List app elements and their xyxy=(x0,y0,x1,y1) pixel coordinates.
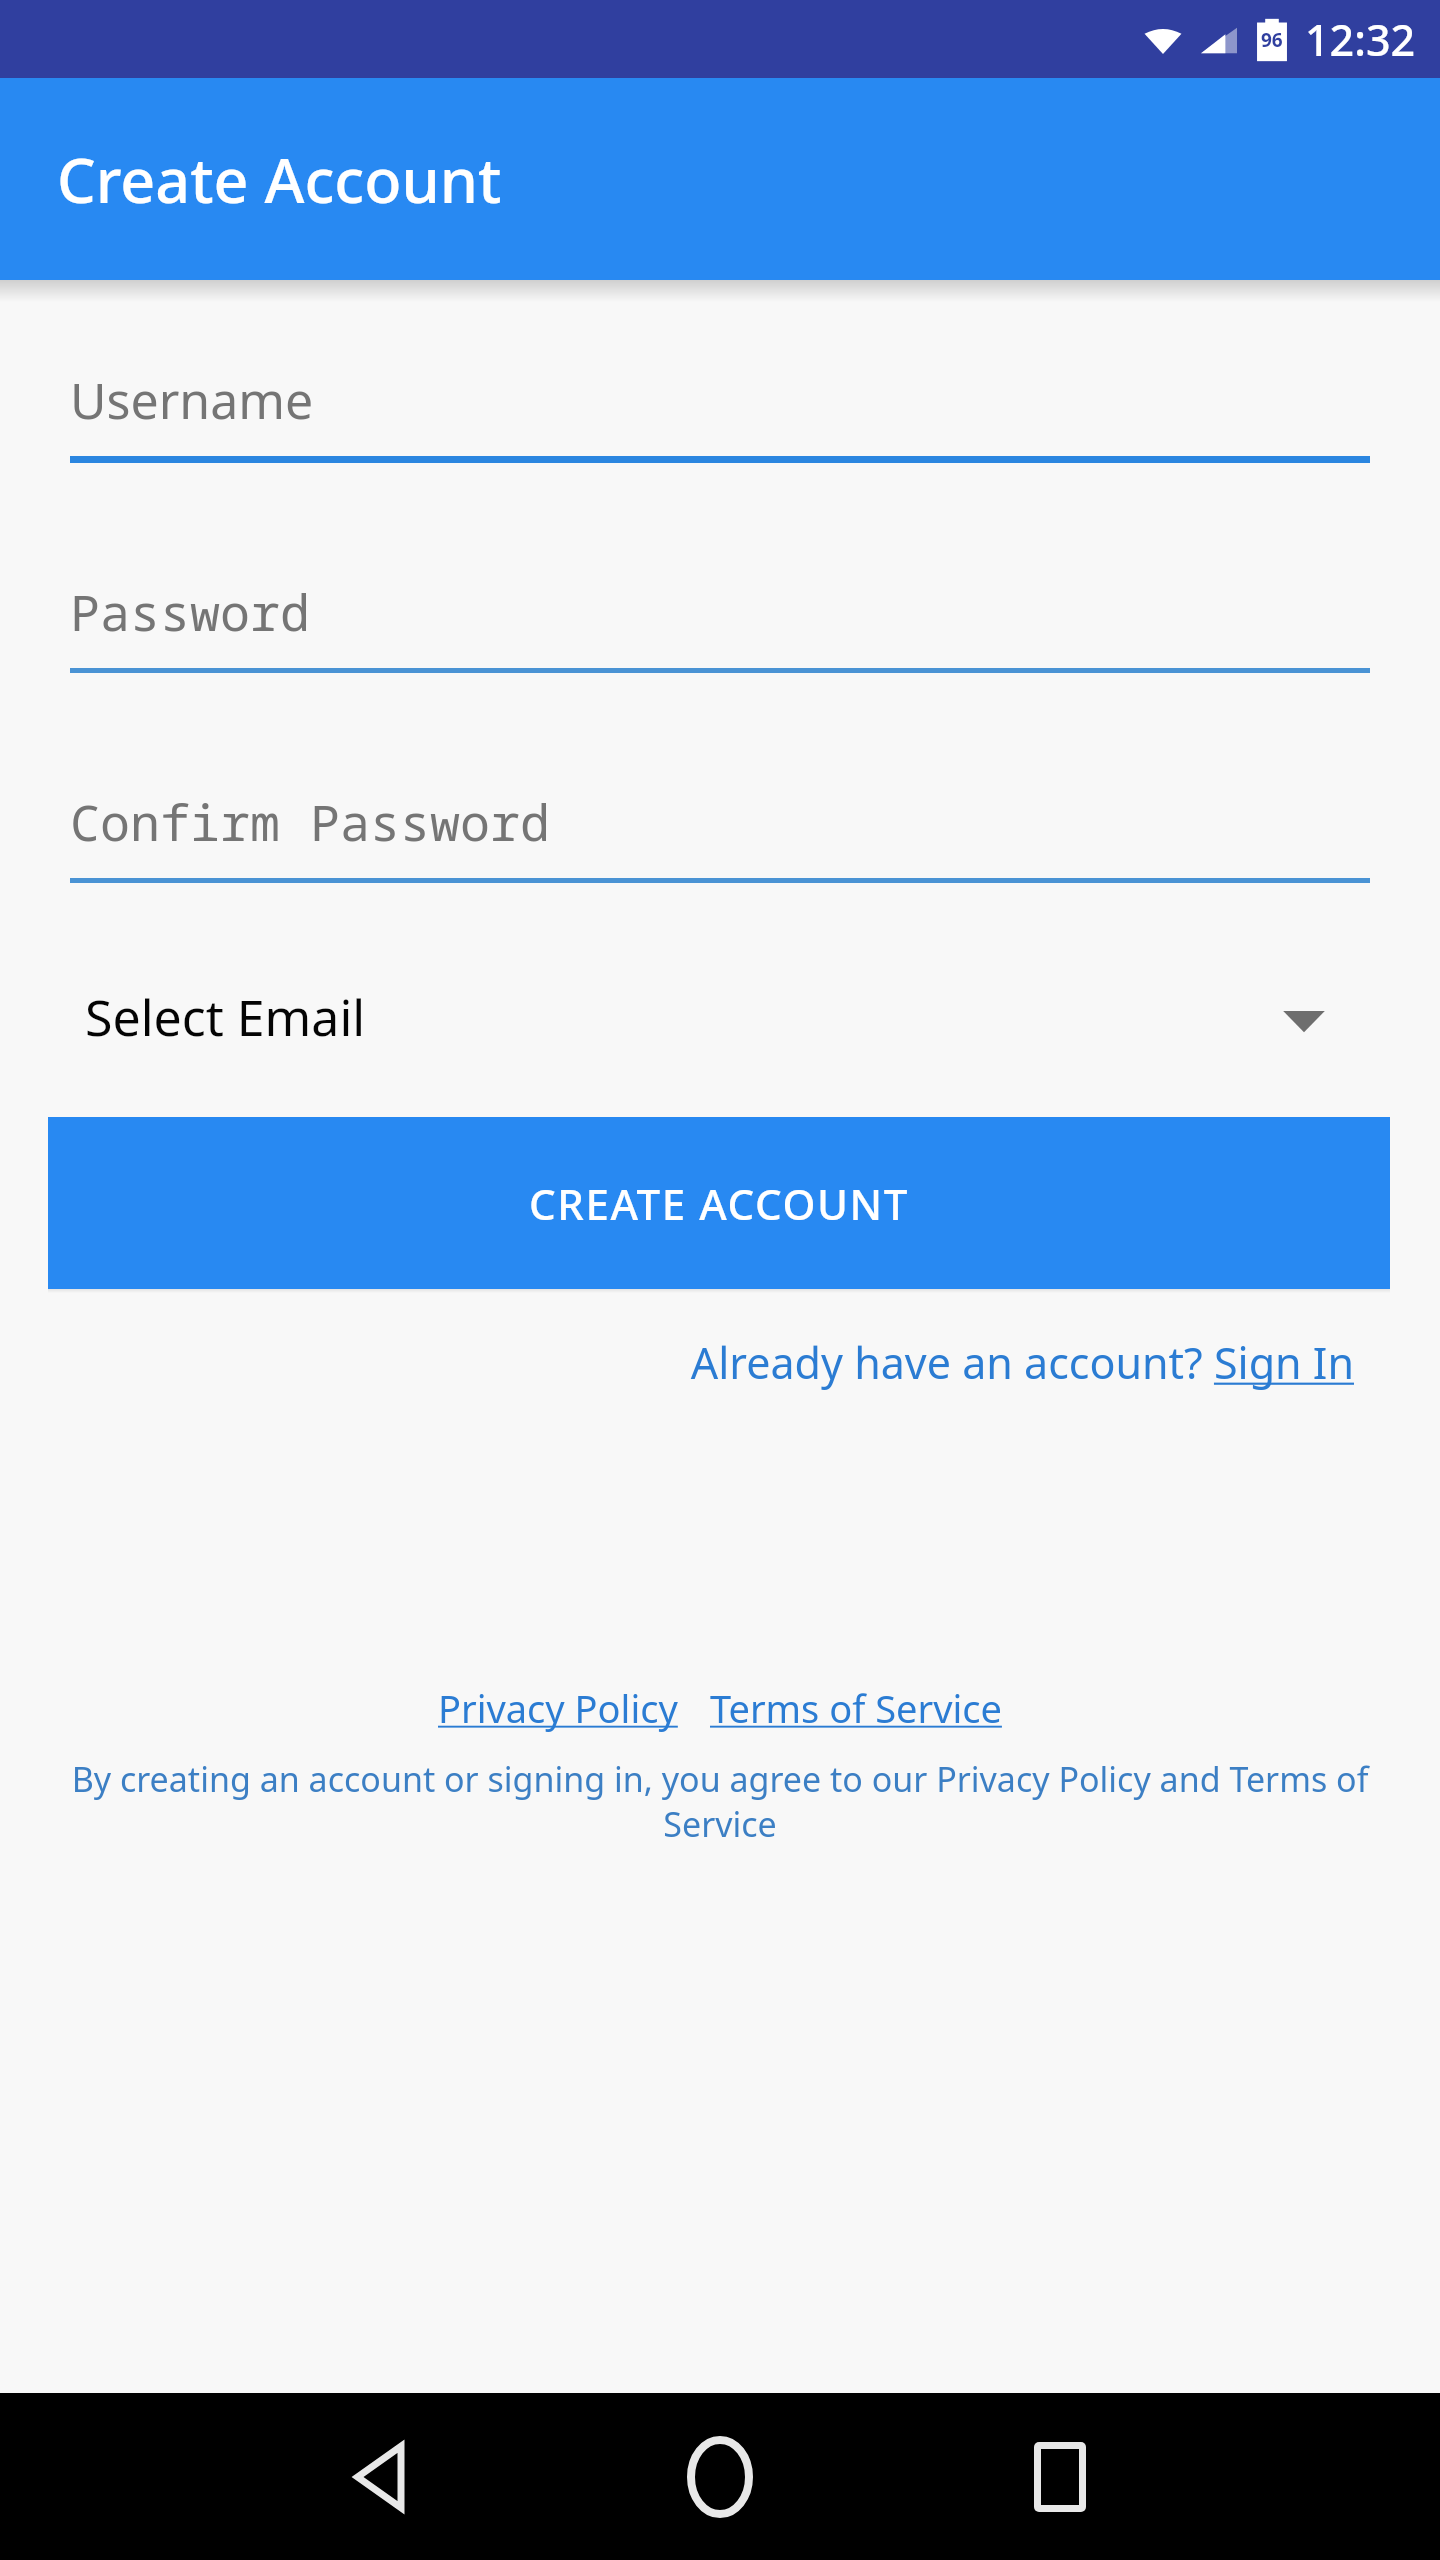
button[interactable]: Terms of Service xyxy=(710,1682,1002,1734)
button[interactable]: Recents xyxy=(890,2393,1230,2560)
button[interactable]: Confirm Password xyxy=(70,788,1370,883)
staticText: CREATE ACCOUNT xyxy=(529,1175,909,1232)
staticText: Password xyxy=(70,578,310,646)
staticText: Select Email xyxy=(85,983,366,1051)
button[interactable]: Home xyxy=(550,2393,890,2560)
staticText: Create Account xyxy=(57,138,502,221)
button[interactable]: CREATE ACCOUNT xyxy=(48,1117,1390,1289)
button[interactable]: Password xyxy=(70,578,1370,673)
other: Select Email dropdown xyxy=(1278,1000,1330,1034)
staticText: 96 xyxy=(1261,27,1283,53)
button[interactable]: Username xyxy=(70,366,1370,463)
staticText: 12:32 xyxy=(1305,10,1416,69)
staticText: By creating an account or signing in, yo… xyxy=(40,1756,1400,1846)
button[interactable]: Already have an account? Sign In xyxy=(0,1333,1354,1392)
button[interactable]: Select Email xyxy=(85,983,1330,1051)
button[interactable]: Back xyxy=(210,2393,550,2560)
staticText: Confirm Password xyxy=(70,788,550,856)
staticText: Username xyxy=(70,366,314,434)
button[interactable]: Privacy Policy xyxy=(438,1682,678,1734)
